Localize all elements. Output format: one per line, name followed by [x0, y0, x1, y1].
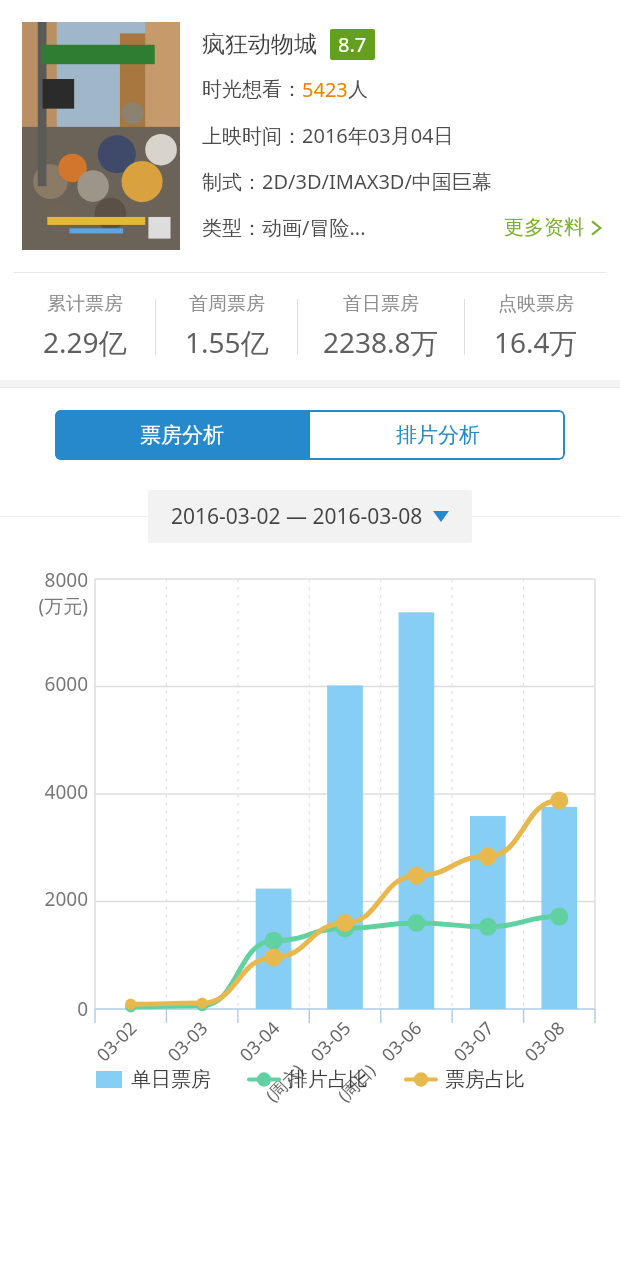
staticText: 2016-03-02 — 2016-03-08 — [171, 502, 423, 531]
staticText: 人 — [348, 77, 368, 102]
staticText: 8.7 — [338, 31, 367, 58]
staticText: 0 — [77, 996, 88, 1022]
staticText: 16.4万 — [494, 323, 578, 361]
staticText: 03-06 — [376, 1016, 427, 1067]
staticText: 更多资料 — [504, 215, 584, 240]
staticText: 03-04 — [234, 1016, 285, 1067]
staticText: 类型：动画/冒险... — [202, 214, 366, 241]
staticText: 4000 — [44, 779, 88, 805]
button[interactable]: 排片分析 — [310, 410, 565, 460]
staticText: 制式：2D/3D/IMAX3D/中国巨幕 — [202, 168, 492, 195]
staticText: 6000 — [44, 671, 88, 697]
button[interactable]: 累计票房 — [14, 292, 155, 361]
staticText: 8000 — [44, 567, 88, 593]
staticText: (万元) — [38, 593, 88, 619]
button[interactable]: 排片占比 — [243, 1067, 374, 1092]
button[interactable]: 更多资料 — [496, 211, 604, 244]
staticText: 票房占比 — [445, 1067, 525, 1092]
button[interactable]: 票房占比 — [400, 1067, 531, 1092]
staticText: 03-08 — [519, 1016, 570, 1067]
staticText: (周六) — [260, 1058, 309, 1107]
staticText: 排片分析 — [396, 422, 480, 448]
staticText: 票房分析 — [140, 422, 224, 448]
button[interactable]: 首日票房 — [298, 292, 464, 361]
staticText: 2238.8万 — [323, 323, 439, 361]
staticText: (周日) — [332, 1058, 381, 1107]
staticText: 03-03 — [162, 1016, 213, 1067]
staticText: 首周票房 — [189, 292, 265, 316]
staticText: 03-02 — [91, 1016, 142, 1067]
button[interactable]: 单日票房 — [90, 1067, 217, 1092]
staticText: 03-07 — [448, 1016, 499, 1067]
staticText: 累计票房 — [47, 292, 123, 316]
staticText: 点映票房 — [498, 292, 574, 316]
staticText: 单日票房 — [131, 1067, 211, 1092]
staticText: 疯狂动物城 — [202, 30, 317, 59]
staticText: 1.55亿 — [185, 323, 269, 361]
button[interactable]: 2016-03-02 — 2016-03-08 — [148, 490, 472, 543]
staticText: 上映时间：2016年03月04日 — [202, 122, 454, 149]
staticText: 2000 — [44, 886, 88, 912]
staticText: 排片占比 — [288, 1067, 368, 1092]
staticText: 2.29亿 — [43, 323, 127, 361]
staticText: 5423 — [302, 76, 348, 103]
button[interactable]: 点映票房 — [465, 292, 606, 361]
staticText: 03-05 — [305, 1016, 356, 1067]
button[interactable]: 首周票房 — [156, 292, 297, 361]
button[interactable]: 票房分析 — [55, 410, 309, 460]
staticText: 首日票房 — [343, 292, 419, 316]
staticText: 时光想看： — [202, 77, 302, 102]
